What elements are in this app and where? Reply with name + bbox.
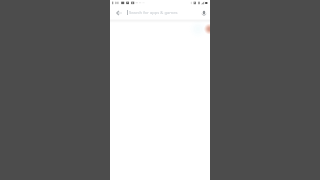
button[interactable]: Voice search: [197, 6, 210, 19]
button[interactable]: Search for apps & games: [125, 6, 196, 19]
button[interactable]: Back: [112, 6, 125, 19]
staticText: Search for apps & games: [129, 10, 178, 16]
